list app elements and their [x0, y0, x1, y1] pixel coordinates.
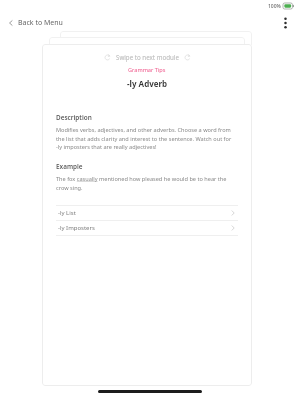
button[interactable]: Back to Menu [0, 15, 71, 31]
staticText: Grammar Tips [128, 66, 166, 74]
staticText: 100% [268, 3, 281, 10]
staticText: -ly List [58, 209, 76, 217]
staticText: -ly Imposters [58, 224, 95, 232]
staticText: Modifies verbs, adjectives, and other ad… [56, 126, 238, 150]
staticText: -ly Adverb [127, 78, 168, 89]
button[interactable]: More options [276, 14, 294, 32]
button[interactable]: -ly List [56, 206, 238, 220]
staticText: Example [56, 162, 83, 171]
staticText: Back to Menu [18, 18, 63, 28]
button[interactable]: -ly Imposters [56, 221, 238, 235]
staticText: The fox casually mentioned how pleased h… [56, 175, 238, 191]
staticText: Swipe to next module [116, 53, 179, 61]
staticText: Description [56, 113, 92, 122]
button[interactable]: Swipe to next module [56, 53, 238, 61]
